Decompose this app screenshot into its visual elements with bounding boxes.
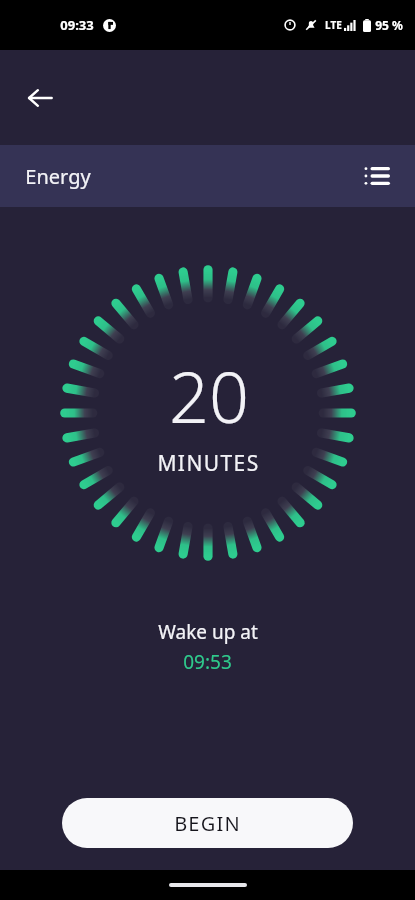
button[interactable]: List <box>355 154 399 198</box>
staticText: LTE <box>325 18 342 32</box>
staticText: Energy <box>25 163 91 190</box>
staticText: 95 % <box>375 17 403 33</box>
button[interactable]: BEGIN <box>62 798 353 848</box>
staticText: 09:53 <box>183 649 232 675</box>
staticText: Wake up at <box>158 619 258 645</box>
staticText: 20 <box>169 348 249 443</box>
staticText: 09:33 <box>60 16 94 34</box>
staticText: MINUTES <box>157 449 260 478</box>
button[interactable]: Energy <box>0 145 415 207</box>
button[interactable]: Back <box>14 72 66 124</box>
staticText: BEGIN <box>174 810 241 837</box>
